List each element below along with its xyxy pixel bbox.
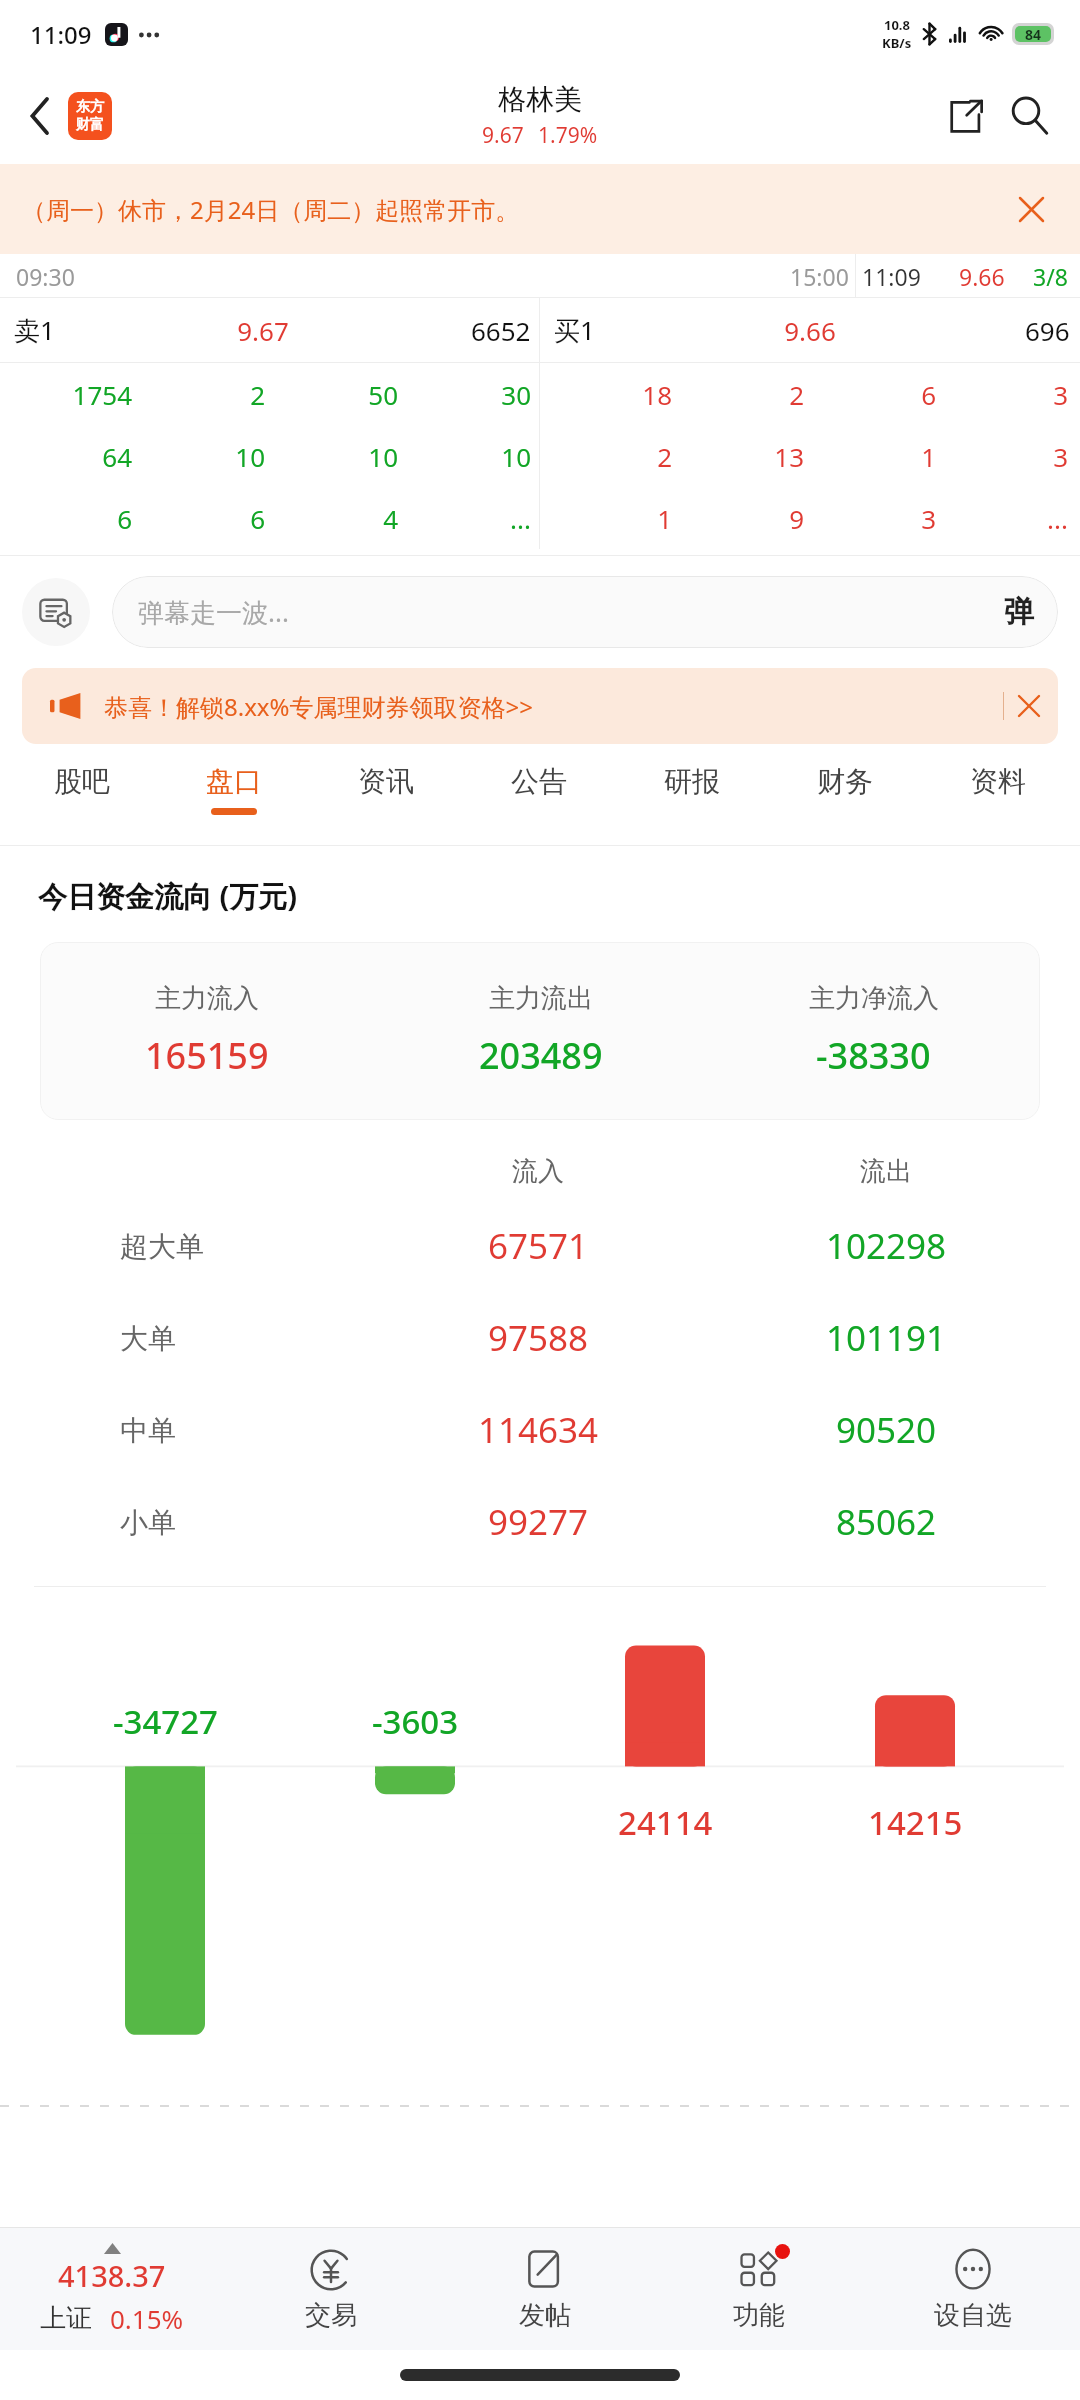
staticText: 4138.37	[58, 2256, 166, 2295]
staticText: 64	[0, 439, 132, 474]
staticText: -3603	[372, 1699, 459, 1744]
staticText: 6	[804, 377, 936, 412]
button[interactable]: Search	[998, 84, 1062, 148]
button[interactable]: 4138.37	[0, 2228, 224, 2350]
staticText: 超大单	[120, 1229, 364, 1264]
button[interactable]: 买1	[540, 298, 1080, 362]
staticText: 上证	[40, 2302, 92, 2335]
staticText: ...	[398, 501, 531, 536]
button[interactable]: Close promo	[1004, 681, 1054, 731]
staticText: 2	[540, 439, 672, 474]
staticText: 流入	[364, 1155, 712, 1188]
staticText: 1	[540, 501, 672, 536]
staticText: 主力净流入	[809, 982, 939, 1015]
staticText: 财富	[76, 116, 104, 134]
staticText: 交易	[305, 2299, 357, 2332]
staticText: 东方	[76, 98, 104, 116]
staticText: 90520	[712, 1406, 1060, 1454]
button[interactable]: 公告	[462, 764, 615, 846]
button[interactable]: 发帖	[438, 2228, 652, 2350]
button[interactable]: Back	[12, 88, 68, 144]
button[interactable]: 交易	[224, 2228, 438, 2350]
staticText: 9.67	[55, 313, 471, 348]
button[interactable]: 资料	[921, 764, 1074, 846]
button[interactable]: 大单	[0, 1292, 1080, 1384]
staticText: 3/8	[1033, 261, 1068, 292]
button[interactable]: Notes	[22, 578, 90, 646]
staticText: 1.79%	[538, 121, 598, 150]
button[interactable]: 弹幕走一波...	[112, 576, 1058, 648]
staticText: 6	[132, 501, 265, 536]
button[interactable]: 主力流入	[40, 942, 1040, 1120]
staticText: 15:00	[790, 261, 849, 292]
staticText: 公告	[511, 764, 567, 799]
staticText: 3	[936, 377, 1068, 412]
staticText: 50	[265, 377, 398, 412]
staticText: 97588	[364, 1314, 712, 1362]
button[interactable]: 财务	[768, 764, 921, 846]
button[interactable]: 中单	[0, 1384, 1080, 1476]
staticText: 设自选	[934, 2299, 1012, 2332]
staticText: 85062	[712, 1498, 1060, 1546]
staticText: （周一）休市，2月24日（周二）起照常开市。	[22, 193, 520, 226]
staticText: 恭喜！解锁8.xx%专属理财券领取资格>>	[104, 690, 533, 723]
staticText: 101191	[712, 1314, 1060, 1362]
staticText: ...	[936, 501, 1068, 536]
staticText: 财务	[817, 764, 873, 799]
staticText: 102298	[712, 1222, 1060, 1270]
staticText: 10	[132, 439, 265, 474]
button[interactable]: 恭喜！解锁8.xx%专属理财券领取资格>>	[22, 668, 1058, 744]
staticText: 67571	[364, 1222, 712, 1270]
staticText: 203489	[479, 1031, 603, 1080]
staticText: 84	[1025, 25, 1042, 44]
button[interactable]: 设自选	[866, 2228, 1080, 2350]
staticText: 165159	[145, 1031, 269, 1080]
staticText: 买1	[554, 312, 595, 348]
button[interactable]: East Money	[68, 92, 112, 140]
staticText: 9.67	[482, 121, 524, 150]
staticText: 流出	[712, 1155, 1060, 1188]
staticText: -38330	[816, 1031, 931, 1080]
staticText: 11:09	[30, 18, 92, 51]
staticText: 研报	[664, 764, 720, 799]
button[interactable]: （周一）休市，2月24日（周二）起照常开市。	[0, 164, 1080, 254]
button[interactable]: 研报	[615, 764, 768, 846]
staticText: 18	[540, 377, 672, 412]
button[interactable]: Close notice	[1006, 184, 1056, 234]
button[interactable]: Share	[934, 84, 998, 148]
button[interactable]: 卖1	[0, 298, 539, 362]
staticText: 主力流入	[155, 982, 259, 1015]
staticText: 功能	[733, 2299, 785, 2332]
staticText: 10.8	[884, 16, 910, 34]
button[interactable]: 资讯	[310, 764, 462, 846]
staticText: 9.66	[959, 261, 1005, 292]
staticText: 14215	[868, 1800, 963, 1845]
staticText: 大单	[120, 1321, 364, 1356]
staticText: -34727	[113, 1699, 218, 1744]
staticText: 99277	[364, 1498, 712, 1546]
staticText: 11:09	[862, 261, 921, 292]
staticText: 4	[265, 501, 398, 536]
staticText: 6	[0, 501, 132, 536]
button[interactable]: 股吧	[6, 764, 158, 846]
staticText: 主力流出	[489, 982, 593, 1015]
button[interactable]: 盘口	[158, 764, 310, 846]
staticText: 盘口	[206, 764, 262, 799]
staticText: 卖1	[14, 312, 55, 348]
staticText: 24114	[618, 1800, 713, 1845]
button[interactable]: 功能	[652, 2228, 866, 2350]
staticText: 今日资金流向 (万元)	[38, 876, 298, 916]
staticText: 股吧	[54, 764, 110, 799]
button[interactable]: 小单	[0, 1476, 1080, 1568]
staticText: 6652	[471, 313, 531, 348]
staticText: 696	[1025, 313, 1070, 348]
staticText: 13	[672, 439, 804, 474]
staticText: 10	[265, 439, 398, 474]
button[interactable]: 超大单	[0, 1200, 1080, 1292]
staticText: 09:30	[16, 261, 75, 292]
staticText: 弹幕走一波...	[138, 594, 289, 630]
staticText: 1	[804, 439, 936, 474]
staticText: 中单	[120, 1413, 364, 1448]
staticText: 1754	[0, 377, 132, 412]
staticText: 114634	[364, 1406, 712, 1454]
